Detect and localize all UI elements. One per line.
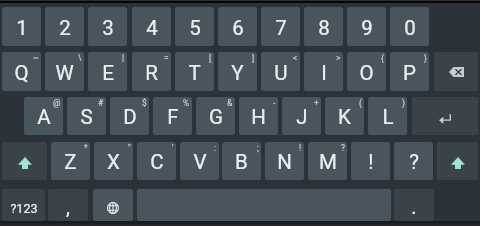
staticText: $: [142, 98, 147, 108]
button[interactable]: W: [45, 52, 84, 91]
button[interactable]: 1: [2, 7, 41, 46]
staticText: -: [273, 98, 276, 108]
button[interactable]: O: [347, 52, 386, 91]
button[interactable]: H: [239, 97, 278, 135]
button[interactable]: D: [110, 97, 149, 135]
staticText: L: [382, 105, 394, 129]
button[interactable]: Shift: [2, 142, 47, 180]
button[interactable]: U: [261, 52, 300, 91]
staticText: T: [188, 61, 201, 85]
staticText: <: [293, 53, 298, 63]
button[interactable]: Backspace: [434, 52, 478, 91]
staticText: Q: [14, 61, 29, 85]
button[interactable]: T: [175, 52, 214, 91]
button[interactable]: ?123: [2, 189, 45, 221]
button[interactable]: G: [196, 97, 235, 135]
staticText: =: [164, 53, 169, 63]
staticText: [: [209, 53, 212, 63]
staticText: 9: [361, 16, 373, 40]
staticText: ,: [66, 195, 70, 218]
button[interactable]: 4: [132, 7, 171, 46]
staticText: 2: [59, 16, 71, 40]
staticText: E: [102, 61, 114, 85]
staticText: @: [53, 98, 61, 108]
staticText: ;: [257, 143, 259, 153]
button[interactable]: Enter: [412, 97, 478, 135]
staticText: U: [274, 61, 288, 85]
staticText: F: [167, 105, 179, 129]
staticText: J: [296, 105, 308, 129]
button[interactable]: Z: [51, 142, 90, 180]
staticText: ~: [33, 53, 39, 63]
staticText: 5: [189, 16, 201, 40]
staticText: G: [209, 105, 223, 129]
staticText: S: [80, 105, 93, 129]
button[interactable]: Change keyboard: [93, 189, 133, 221]
button[interactable]: 3: [88, 7, 127, 46]
staticText: 0: [404, 16, 416, 40]
button[interactable]: 0: [390, 7, 429, 46]
staticText: ): [402, 98, 405, 108]
button[interactable]: Q: [2, 52, 41, 91]
staticText: .: [411, 195, 417, 218]
staticText: 7: [275, 16, 287, 40]
staticText: 1: [16, 16, 28, 40]
button[interactable]: P: [390, 52, 429, 91]
staticText: >: [336, 53, 341, 63]
staticText: O: [359, 61, 374, 85]
staticText: ": [128, 143, 131, 153]
staticText: ': [172, 143, 174, 153]
staticText: (: [359, 98, 362, 108]
button[interactable]: 8: [304, 7, 343, 46]
button[interactable]: L: [368, 97, 407, 135]
button[interactable]: M: [308, 142, 347, 180]
staticText: D: [123, 105, 137, 129]
button[interactable]: 9: [347, 7, 386, 46]
button[interactable]: I: [304, 52, 343, 91]
button[interactable]: X: [94, 142, 133, 180]
staticText: #: [98, 98, 104, 108]
staticText: }: [424, 53, 427, 63]
staticText: I: [321, 61, 327, 85]
button[interactable]: ,: [48, 189, 88, 221]
button[interactable]: K: [325, 97, 364, 135]
button[interactable]: R: [132, 52, 171, 91]
staticText: !: [299, 143, 302, 153]
button[interactable]: A: [24, 97, 63, 135]
staticText: ?123: [10, 201, 38, 216]
staticText: ?: [341, 143, 345, 153]
button[interactable]: 6: [218, 7, 257, 46]
staticText: &: [227, 98, 233, 108]
button[interactable]: F: [153, 97, 192, 135]
button[interactable]: N: [265, 142, 304, 180]
staticText: \: [78, 53, 82, 63]
button[interactable]: V: [180, 142, 219, 180]
staticText: H: [251, 105, 266, 129]
button[interactable]: .: [394, 189, 434, 221]
button[interactable]: ?: [394, 142, 433, 180]
button[interactable]: B: [222, 142, 261, 180]
button[interactable]: S: [67, 97, 106, 135]
button[interactable]: Y: [218, 52, 257, 91]
button[interactable]: 7: [261, 7, 300, 46]
staticText: 4: [146, 16, 158, 40]
staticText: %: [183, 98, 190, 108]
button[interactable]: Shift: [437, 142, 478, 180]
button[interactable]: 5: [175, 7, 214, 46]
staticText: N: [277, 150, 292, 174]
button[interactable]: 2: [45, 7, 84, 46]
staticText: Y: [231, 61, 244, 85]
staticText: |: [122, 53, 125, 63]
button[interactable]: E: [88, 52, 127, 91]
button[interactable]: J: [282, 97, 321, 135]
staticText: K: [338, 105, 351, 129]
staticText: 6: [232, 16, 244, 40]
staticText: M: [319, 150, 337, 174]
staticText: X: [107, 150, 120, 174]
staticText: R: [145, 61, 158, 85]
button[interactable]: C: [137, 142, 176, 180]
button[interactable]: !: [351, 142, 390, 180]
staticText: A: [37, 105, 51, 129]
staticText: 8: [318, 16, 330, 40]
